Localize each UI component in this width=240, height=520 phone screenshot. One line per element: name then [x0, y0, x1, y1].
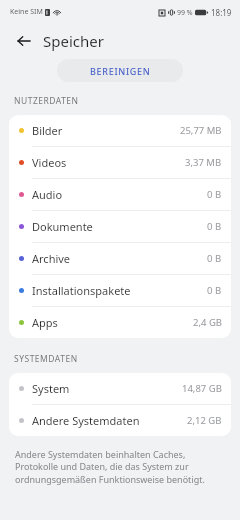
staticText: Keine SIM: [10, 7, 43, 17]
staticText: 0 B: [207, 284, 222, 297]
staticText: 25,77 MB: [180, 124, 222, 137]
staticText: Andere Systemdaten beinhalten Caches, Pr…: [15, 448, 225, 486]
staticText: Dokumente: [32, 219, 207, 234]
staticText: Installationspakete: [32, 283, 207, 298]
staticText: 3,37 MB: [185, 156, 222, 169]
staticText: BEREINIGEN: [90, 65, 151, 77]
staticText: SYSTEMDATEN: [14, 353, 78, 365]
staticText: 14,87 GB: [182, 382, 222, 395]
staticText: NUTZERDATEN: [14, 95, 79, 107]
button[interactable]: Installationspakete: [9, 275, 231, 306]
button[interactable]: Dokumente: [9, 211, 231, 242]
staticText: 0 B: [207, 220, 222, 233]
staticText: Audio: [32, 187, 207, 202]
staticText: 99 %: [177, 8, 193, 18]
staticText: Speicher: [43, 31, 104, 51]
staticText: 0 B: [207, 252, 222, 265]
staticText: Bilder: [32, 123, 180, 138]
button[interactable]: BEREINIGEN: [57, 59, 183, 82]
button[interactable]: Videos: [9, 147, 231, 178]
staticText: System: [32, 381, 182, 396]
button[interactable]: Archive: [9, 243, 231, 274]
button[interactable]: System: [9, 373, 231, 404]
button[interactable]: Bilder: [9, 115, 231, 146]
button[interactable]: Andere Systemdaten: [9, 405, 231, 436]
button[interactable]: Apps: [9, 307, 231, 338]
staticText: Apps: [32, 315, 193, 330]
button[interactable]: Zurück: [10, 27, 38, 55]
staticText: Videos: [32, 155, 185, 170]
button[interactable]: Audio: [9, 179, 231, 210]
staticText: 0 B: [207, 188, 222, 201]
staticText: 2,4 GB: [193, 316, 222, 329]
staticText: Archive: [32, 251, 207, 266]
staticText: 18:19: [211, 7, 232, 18]
staticText: 2,12 GB: [187, 414, 222, 427]
staticText: Andere Systemdaten: [32, 413, 187, 428]
